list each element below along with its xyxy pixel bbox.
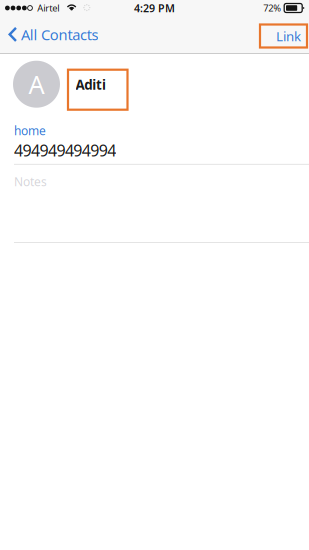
staticText: Link [276, 27, 301, 45]
staticText: Aditi [75, 76, 106, 93]
staticText: home [14, 123, 46, 139]
staticText: All Contacts [21, 25, 98, 44]
staticText: Notes [14, 174, 47, 190]
button[interactable]: Link [260, 21, 307, 47]
button[interactable]: Aditi [68, 70, 127, 110]
button[interactable]: All Contacts [0, 16, 108, 53]
staticText: A [28, 67, 44, 101]
staticText: 72% [263, 2, 281, 14]
staticText: Airtel [37, 2, 59, 14]
staticText: 494949494994 [14, 140, 116, 161]
staticText: 4:29 PM [134, 1, 175, 15]
